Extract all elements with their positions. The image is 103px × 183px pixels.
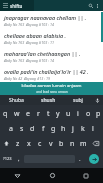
staticText: t <box>47 109 50 119</box>
button[interactable]: r <box>33 106 43 121</box>
staticText: z <box>16 139 20 149</box>
button[interactable]: Recents <box>69 168 103 183</box>
staticText: h <box>61 124 66 134</box>
button[interactable]: ?123 <box>0 151 14 166</box>
button[interactable]: j <box>68 121 78 136</box>
staticText: r <box>37 109 40 119</box>
staticText: k <box>81 124 85 134</box>
button[interactable]: g <box>48 121 58 136</box>
staticText: shush <box>41 97 56 104</box>
button[interactable]: Search <box>87 2 94 9</box>
button[interactable]: subj <box>64 95 91 105</box>
button[interactable]: f <box>38 121 48 136</box>
button[interactable]: c <box>34 136 45 151</box>
button[interactable]: o <box>83 106 93 121</box>
staticText: n <box>70 139 75 149</box>
staticText: y <box>56 109 60 119</box>
button[interactable]: shush <box>32 95 64 105</box>
button[interactable]: d <box>27 121 38 136</box>
staticText: x <box>27 139 31 149</box>
staticText: w <box>14 109 20 119</box>
button[interactable]: h <box>58 121 68 136</box>
button[interactable]: w <box>11 106 22 121</box>
button[interactable]: k <box>78 121 88 136</box>
staticText: i <box>77 109 79 119</box>
button[interactable]: t <box>43 106 53 121</box>
staticText: b <box>59 139 64 149</box>
button[interactable]: Home <box>35 168 69 183</box>
staticText: subj <box>73 97 83 104</box>
button[interactable]: z <box>13 136 23 151</box>
button[interactable]: p <box>93 106 103 121</box>
staticText: m <box>80 139 87 149</box>
button[interactable]: , <box>14 151 24 166</box>
staticText: u <box>66 109 71 119</box>
staticText: a <box>9 124 13 134</box>
staticText: Abây No 763 Abyaag #103 : 14 <box>4 58 54 63</box>
staticText: Abây No 763 Abyaag #103 : 11 <box>4 40 54 45</box>
button[interactable]: v <box>45 136 56 151</box>
staticText: l <box>92 124 94 134</box>
button[interactable]: jnapragar naanavaa chellam || . <box>0 11 103 29</box>
staticText: jnapragar naanavaa chellam || . <box>4 14 87 21</box>
staticText: f <box>42 124 45 134</box>
staticText: s <box>20 124 24 134</box>
staticText: q <box>3 109 8 119</box>
staticText: o <box>86 109 91 119</box>
button[interactable]: e <box>22 106 33 121</box>
staticText: shiftu <box>10 3 23 9</box>
button[interactable]: Enter <box>89 154 99 164</box>
button[interactable]: maharaa'lan chethaangan || . <box>0 47 103 65</box>
button[interactable]: u <box>63 106 73 121</box>
button[interactable]: a <box>5 121 16 136</box>
button[interactable]: kilaalaa aarean lumain anjaam <box>0 82 103 95</box>
button[interactable]: Voice input <box>91 95 103 105</box>
button[interactable]: More options <box>94 2 101 9</box>
staticText: maharaa'lan chethaangan || . <box>4 50 81 57</box>
button[interactable]: m <box>78 136 89 151</box>
staticText: Abây No 763 Abyaag #103 : 14 <box>4 22 54 27</box>
button[interactable]: s <box>16 121 27 136</box>
button[interactable]: x <box>23 136 34 151</box>
staticText: c <box>38 139 42 149</box>
staticText: Shuba <box>9 97 24 104</box>
staticText: kilaalaa aarean lumain anjaam <box>21 83 82 89</box>
staticText: j <box>72 124 74 134</box>
staticText: ovalla padi'in challaija'lo'ir || 42 . <box>4 68 89 75</box>
button[interactable]: Back <box>0 168 35 183</box>
button[interactable]: i <box>73 106 83 121</box>
button[interactable]: chellaae abaan alabisia . <box>0 29 103 47</box>
staticText: chellaae abaan alabisia . <box>4 32 67 39</box>
staticText: g <box>51 124 56 134</box>
button[interactable]: l <box>88 121 98 136</box>
staticText: e <box>26 109 30 119</box>
staticText: Abây No 42 Abyaag #13 : 19 <box>4 76 50 81</box>
button[interactable]: Shuba <box>0 95 32 105</box>
staticText: , <box>18 155 20 163</box>
staticText: p <box>96 109 101 119</box>
staticText: v <box>49 139 53 149</box>
staticText: . <box>79 155 81 163</box>
staticText: d <box>30 124 35 134</box>
staticText: and lead seeu arraan <box>36 90 68 94</box>
button[interactable]: ovalla padi'in challaija'lo'ir || 42 . <box>0 65 103 82</box>
button[interactable]: Menu <box>2 2 9 9</box>
staticText: ?123 <box>3 156 12 161</box>
button[interactable]: y <box>53 106 63 121</box>
button[interactable]: n <box>67 136 78 151</box>
button[interactable]: q <box>0 106 11 121</box>
button[interactable]: b <box>56 136 67 151</box>
button[interactable]: . <box>75 151 85 166</box>
button[interactable]: Shift <box>0 136 13 151</box>
button[interactable]: Backspace <box>89 136 103 151</box>
